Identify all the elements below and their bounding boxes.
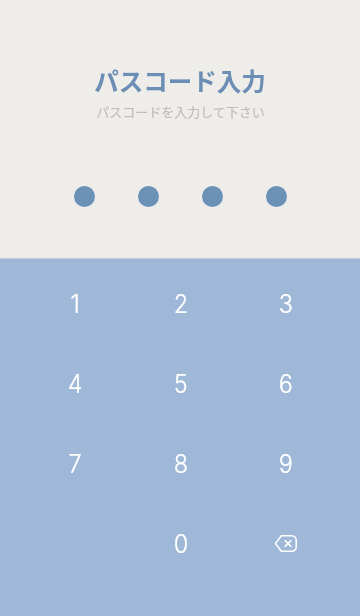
other: Delete: [274, 535, 297, 552]
button[interactable]: 7: [23, 423, 128, 503]
button[interactable]: 6: [233, 343, 338, 423]
button[interactable]: 9: [233, 423, 338, 503]
button[interactable]: 8: [128, 423, 233, 503]
button[interactable]: 0: [128, 503, 233, 583]
button[interactable]: 5: [128, 343, 233, 423]
staticText: パスコード入力: [94, 63, 266, 98]
staticText: 9: [279, 448, 293, 479]
staticText: 5: [174, 368, 188, 399]
staticText: 1: [70, 288, 80, 319]
staticText: 2: [174, 288, 188, 319]
staticText: 3: [279, 288, 293, 319]
staticText: 6: [279, 368, 293, 399]
staticText: 4: [68, 368, 83, 399]
staticText: 7: [69, 448, 82, 479]
button[interactable]: 1: [23, 263, 128, 343]
button[interactable]: Delete: [233, 503, 338, 583]
button[interactable]: 3: [233, 263, 338, 343]
button[interactable]: 2: [128, 263, 233, 343]
staticText: パスコードを入力して下さい: [96, 102, 265, 121]
staticText: 8: [174, 448, 188, 479]
staticText: 0: [174, 528, 188, 559]
button[interactable]: 4: [23, 343, 128, 423]
